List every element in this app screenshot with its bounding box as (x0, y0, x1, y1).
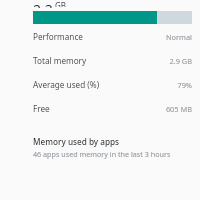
staticText: 605 MB (165, 104, 192, 114)
staticText: Free (33, 103, 50, 114)
staticText: Memory used by apps (33, 136, 120, 147)
staticText: Performance (33, 31, 83, 42)
staticText: 79% (177, 80, 192, 90)
staticText: 2.9 GB (169, 56, 192, 66)
button[interactable]: Average used (%) (0, 66, 200, 90)
button[interactable]: Free (0, 90, 200, 114)
staticText: Average used (%) (33, 79, 100, 90)
button[interactable]: Performance (0, 24, 200, 42)
staticText: 2.3 (33, 0, 53, 8)
staticText: 46 apps used memory in the last 3 hours (33, 149, 171, 159)
staticText: Normal (165, 32, 192, 42)
button[interactable]: Memory used by apps (0, 136, 200, 159)
staticText: GB (55, 0, 67, 7)
button[interactable]: Total memory (0, 42, 200, 66)
staticText: Total memory (33, 55, 87, 66)
